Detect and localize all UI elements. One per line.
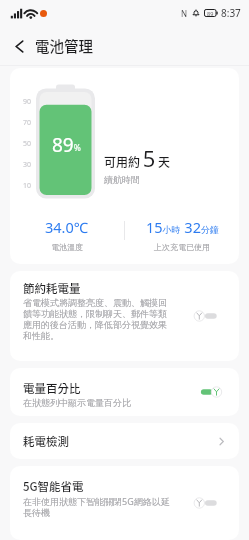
staticText: 續航時間	[104, 174, 140, 185]
staticText: 節約耗電量	[23, 280, 81, 297]
staticText: 89	[207, 10, 214, 17]
staticText: 50	[23, 139, 32, 149]
staticText: 應用的後台活動，降低部分視覺效果	[23, 319, 167, 330]
staticText: 耗電檢測	[23, 433, 217, 450]
staticText: 可用約 5 天	[104, 143, 170, 173]
staticText: 電池溫度	[51, 242, 83, 252]
staticText: 8:37	[221, 6, 241, 20]
button[interactable]: Switch off	[194, 497, 222, 509]
staticText: 10	[23, 181, 32, 191]
button[interactable]: 節約耗電量	[10, 271, 239, 361]
staticText: 5G智能省電	[23, 478, 84, 495]
button[interactable]: 電量百分比	[10, 368, 239, 416]
staticText: 省電模式將調整亮度、震動、觸摸回	[23, 297, 167, 308]
staticText: 電池管理	[35, 35, 93, 56]
staticText: 在非使用狀態下智能關閉5G網絡以延	[23, 495, 170, 507]
button[interactable]: 5G智能省電	[10, 466, 239, 540]
button[interactable]: Back	[0, 26, 35, 66]
staticText: 70	[23, 118, 32, 128]
staticText: N	[181, 8, 188, 19]
button[interactable]: Switch on	[194, 386, 222, 398]
staticText: 15小時 32分鐘	[146, 217, 219, 237]
staticText: 89%	[52, 132, 81, 158]
button[interactable]: Switch off	[194, 310, 222, 322]
staticText: 90	[23, 97, 32, 107]
button[interactable]: 耗電檢測	[10, 423, 239, 459]
staticText: 上次充電已使用	[154, 242, 210, 252]
staticText: 電量百分比	[23, 380, 81, 397]
staticText: 在狀態列中顯示電量百分比	[23, 397, 131, 408]
staticText: 30	[23, 160, 32, 170]
staticText: 34.0℃	[45, 217, 89, 237]
staticText: 饋等功能狀態，限制聊天、郵件等類	[23, 308, 167, 319]
staticText: 長待機	[23, 507, 50, 518]
staticText: 和性能。	[23, 330, 59, 341]
